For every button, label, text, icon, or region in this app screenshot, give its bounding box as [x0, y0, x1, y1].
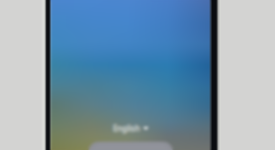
staticText: English — [113, 123, 140, 134]
button[interactable]: English — [106, 120, 155, 137]
